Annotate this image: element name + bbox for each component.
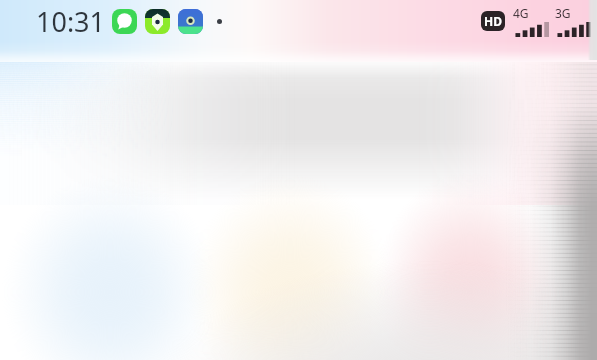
staticText: 10:31 bbox=[36, 3, 106, 40]
staticText: 3G bbox=[555, 5, 571, 21]
staticText: 4G bbox=[513, 5, 529, 21]
staticText: HD bbox=[484, 13, 502, 29]
